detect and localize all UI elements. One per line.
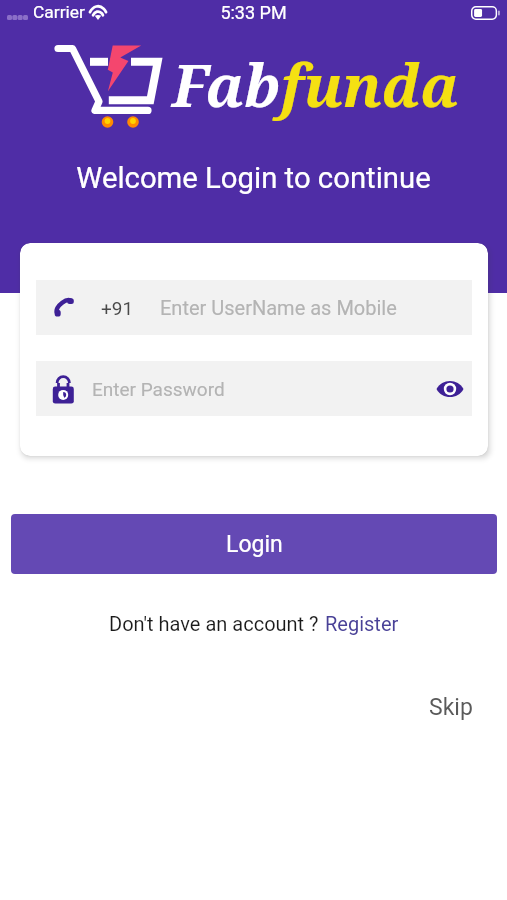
staticText: Enter Password: [92, 378, 225, 400]
staticText: Fabfunda: [172, 45, 459, 124]
staticText: Skip: [429, 694, 473, 721]
staticText: Welcome Login to continue: [0, 161, 507, 195]
button[interactable]: Skip: [425, 690, 477, 725]
staticText: Login: [226, 531, 283, 558]
staticText: 5:33 PM: [0, 2, 507, 23]
staticText: +91: [101, 297, 134, 319]
button[interactable]: Show password: [432, 369, 468, 409]
staticText: Register: [325, 612, 399, 635]
staticText: Carrier: [33, 2, 85, 22]
button[interactable]: Login: [11, 514, 497, 574]
button[interactable]: Register: [325, 612, 399, 635]
staticText: Don't have an account ?: [109, 612, 319, 635]
button[interactable]: Enter Password: [36, 361, 472, 416]
staticText: Enter UserName as Mobile: [160, 296, 397, 319]
button[interactable]: +91: [36, 280, 472, 335]
